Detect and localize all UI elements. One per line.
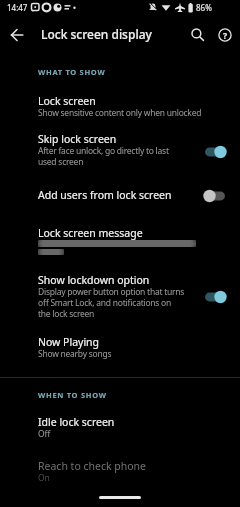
staticText: 86%	[196, 2, 212, 13]
button[interactable]: Lock screen message	[0, 224, 240, 266]
staticText: On	[38, 472, 50, 484]
staticText: Idle lock screen	[38, 415, 115, 429]
staticText: Lock screen	[38, 94, 96, 108]
button[interactable]: Add users from lock screen	[0, 186, 240, 212]
button[interactable]: Lock screen	[0, 92, 240, 128]
button[interactable]: Idle lock screen	[0, 413, 240, 449]
staticText: Lock screen message	[38, 226, 143, 240]
staticText: Add users from lock screen	[38, 188, 172, 202]
staticText: Off	[38, 428, 50, 440]
staticText: off Smart Lock, and notifications on	[38, 297, 171, 309]
staticText: After face unlock, go directly to last	[38, 145, 169, 157]
button[interactable]: Show lockdown option	[0, 271, 240, 325]
staticText: Skip lock screen	[38, 132, 117, 146]
button[interactable]	[186, 22, 210, 48]
button[interactable]: Reach to check phone	[0, 457, 240, 493]
staticText: Display power button option that turns	[38, 286, 185, 298]
staticText: Now Playing	[38, 335, 100, 349]
button[interactable]: Skip lock screen	[0, 130, 240, 178]
staticText: the lock screen	[38, 308, 95, 320]
staticText: ?	[223, 30, 228, 42]
staticText: 14:47	[7, 2, 28, 13]
button[interactable]	[4, 22, 30, 48]
staticText: Lock screen display	[41, 26, 152, 42]
staticText: WHEN TO SHOW	[38, 390, 107, 400]
staticText: Show sensitive content only when unlocke…	[38, 107, 202, 119]
staticText: Reach to check phone	[38, 459, 147, 473]
staticText: Show lockdown option	[38, 273, 150, 287]
staticText: Show nearby songs	[38, 348, 112, 360]
button[interactable]: Now Playing	[0, 333, 240, 369]
button[interactable]: ?	[213, 22, 238, 48]
staticText: WHAT TO SHOW	[38, 67, 106, 77]
staticText: used screen	[38, 156, 84, 168]
